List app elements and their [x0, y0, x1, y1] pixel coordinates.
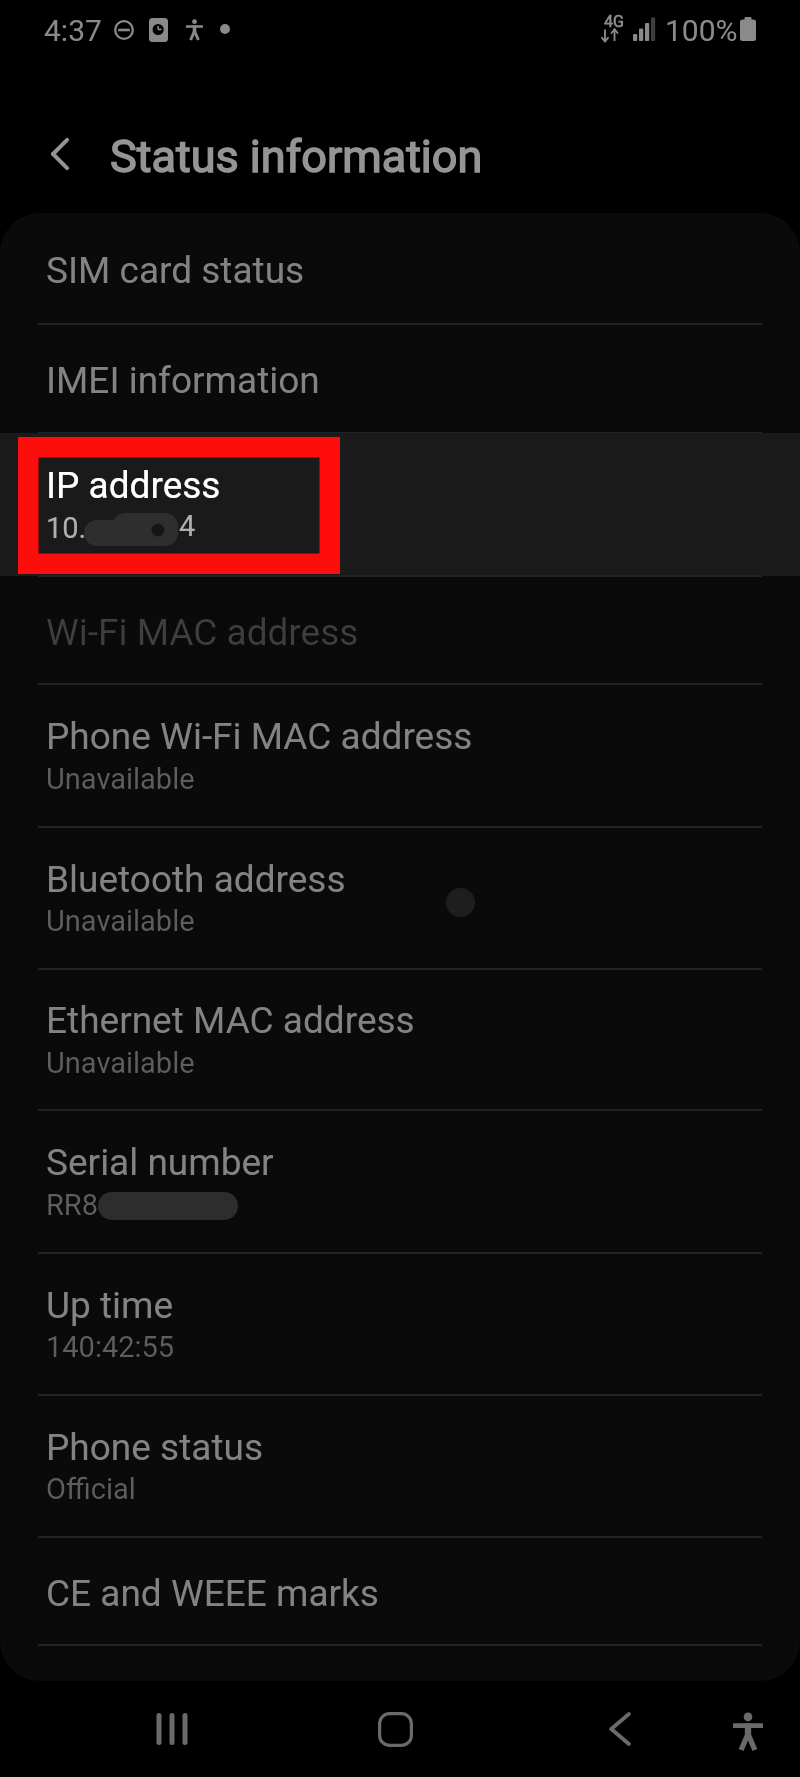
button[interactable]: Wi-Fi MAC address [0, 576, 800, 684]
staticText: Bluetooth address [46, 858, 346, 901]
button[interactable]: Ethernet MAC address [0, 969, 800, 1110]
button[interactable]: Recent apps [132, 1689, 212, 1769]
staticText: Status information [110, 130, 483, 183]
staticText: 4:37 [44, 13, 102, 48]
button[interactable]: Up time [0, 1253, 800, 1395]
button[interactable]: Navigate up [26, 119, 96, 189]
button[interactable]: Phone status [0, 1395, 800, 1537]
button[interactable]: Accessibility [710, 1689, 790, 1769]
staticText: Unavailable [46, 762, 195, 796]
staticText: Phone status [46, 1426, 263, 1469]
staticText: CE and WEEE marks [46, 1572, 379, 1615]
staticText: IMEI information [46, 359, 320, 402]
button[interactable]: Bluetooth address [0, 827, 800, 969]
staticText: Official [46, 1472, 136, 1506]
staticText: Wi-Fi MAC address [46, 611, 359, 654]
button[interactable]: Home [355, 1689, 435, 1769]
staticText: RR8 [46, 1188, 99, 1222]
staticText: Unavailable [46, 904, 195, 938]
staticText: 140:42:55 [46, 1330, 175, 1364]
button[interactable]: IP address [0, 433, 800, 576]
staticText: Serial number [46, 1141, 274, 1184]
staticText: IP address [46, 464, 221, 507]
staticText: Ethernet MAC address [46, 999, 415, 1042]
staticText: 4 [179, 509, 196, 543]
button[interactable]: Serial number [0, 1110, 800, 1253]
button[interactable]: CE and WEEE marks [0, 1537, 800, 1645]
staticText: SIM card status [46, 249, 305, 292]
staticText: Up time [46, 1284, 174, 1327]
button[interactable]: Phone Wi-Fi MAC address [0, 684, 800, 827]
staticText: Unavailable [46, 1046, 195, 1080]
button[interactable]: Back [581, 1689, 661, 1769]
staticText: 4G [604, 12, 624, 31]
button[interactable]: IMEI information [0, 324, 800, 433]
staticText: 100% [665, 13, 738, 48]
staticText: 10. [46, 511, 87, 545]
button[interactable]: SIM card status [0, 213, 800, 324]
staticText: Phone Wi-Fi MAC address [46, 715, 473, 758]
